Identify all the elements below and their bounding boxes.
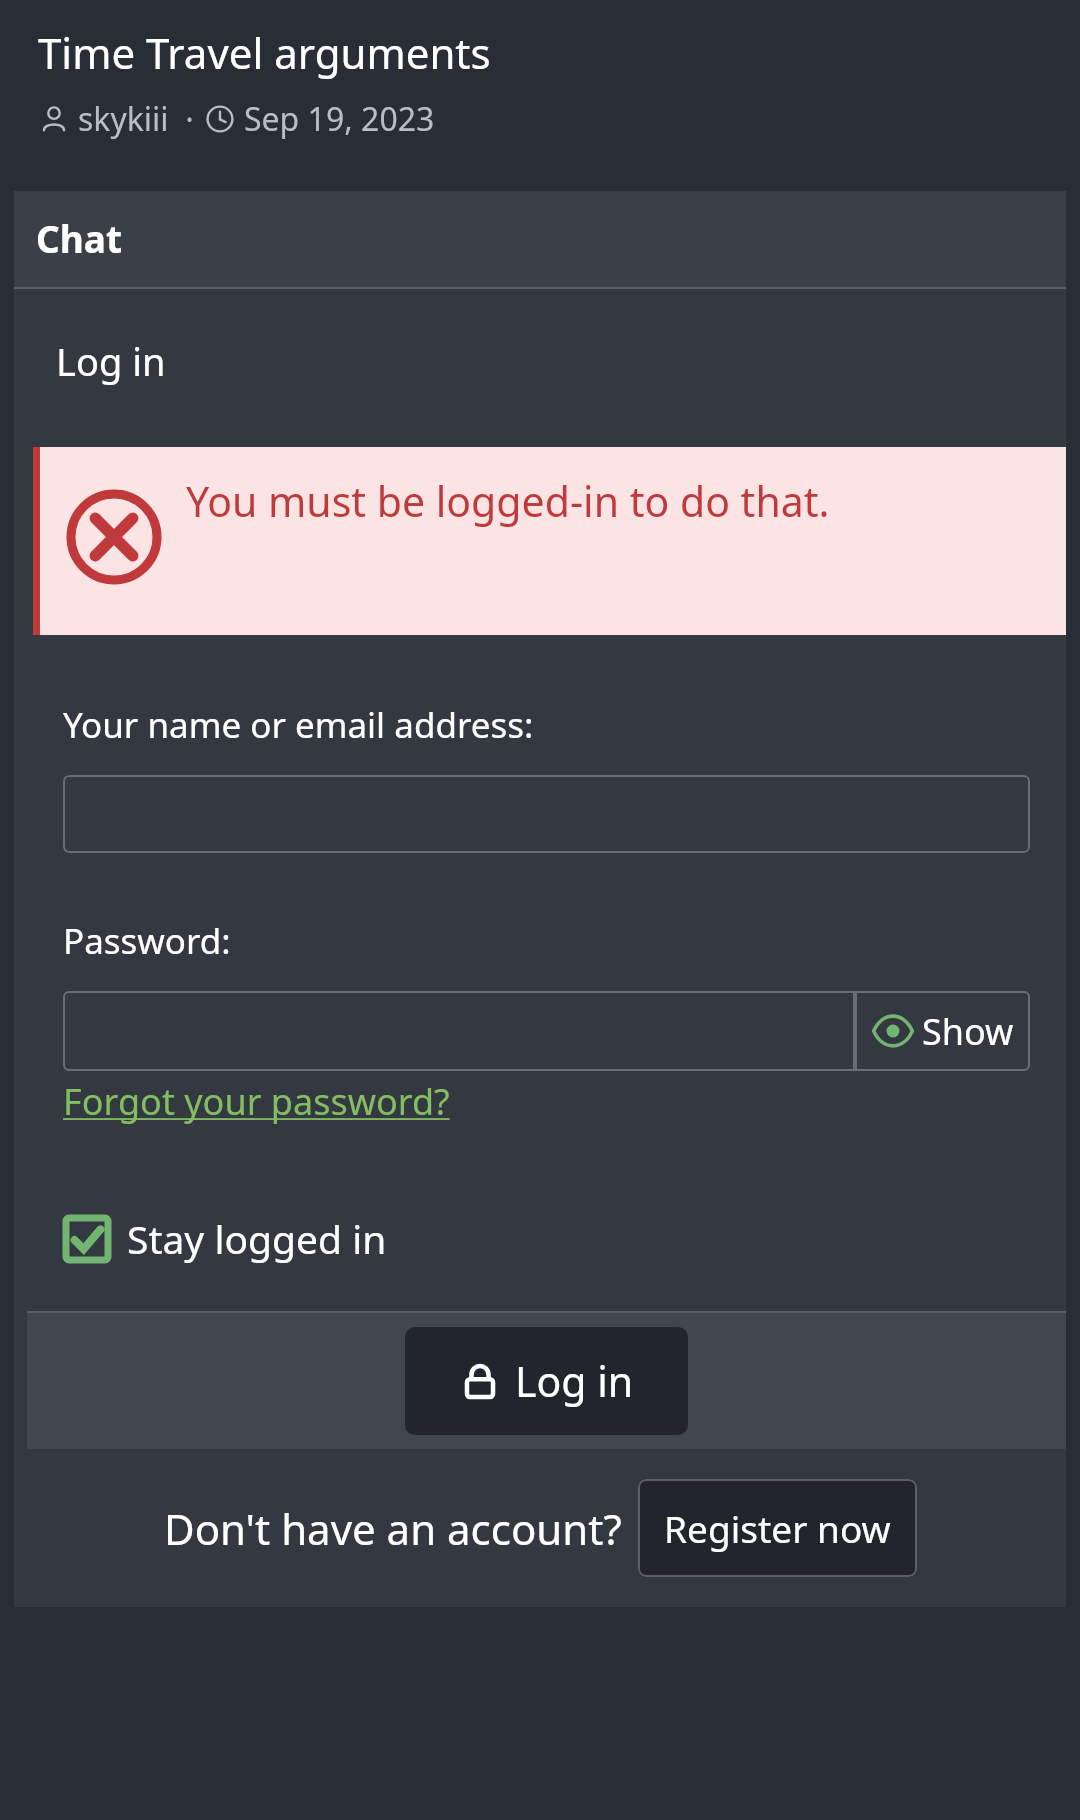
staticText: Register now	[664, 1503, 891, 1553]
staticText: Stay logged in	[127, 1212, 387, 1265]
button[interactable]	[63, 991, 855, 1071]
staticText: You must be logged-in to do that.	[186, 473, 830, 529]
staticText: Forgot your password?	[63, 1077, 450, 1126]
staticText: Time Travel arguments	[38, 24, 491, 81]
button[interactable]: Show password	[855, 991, 1030, 1071]
button[interactable]: Register now	[638, 1479, 917, 1577]
staticText: Sep 19, 2023	[244, 97, 435, 141]
staticText: Log in	[56, 335, 166, 387]
staticText: skykiii ·	[78, 97, 194, 141]
staticText: Show	[922, 1007, 1014, 1056]
staticText: Password:	[63, 917, 231, 965]
staticText: Don't have an account?	[164, 1500, 622, 1557]
button[interactable]	[63, 775, 1030, 853]
button[interactable]: Chat	[14, 191, 1066, 287]
staticText: Log in	[515, 1353, 634, 1409]
button[interactable]: Forgot your password?	[63, 1077, 450, 1126]
other: Show password	[872, 1010, 914, 1052]
button[interactable]: Log in	[405, 1327, 688, 1435]
staticText: Chat	[36, 213, 123, 263]
staticText: Your name or email address:	[63, 701, 534, 749]
button[interactable]: Stay logged in	[63, 1212, 387, 1265]
